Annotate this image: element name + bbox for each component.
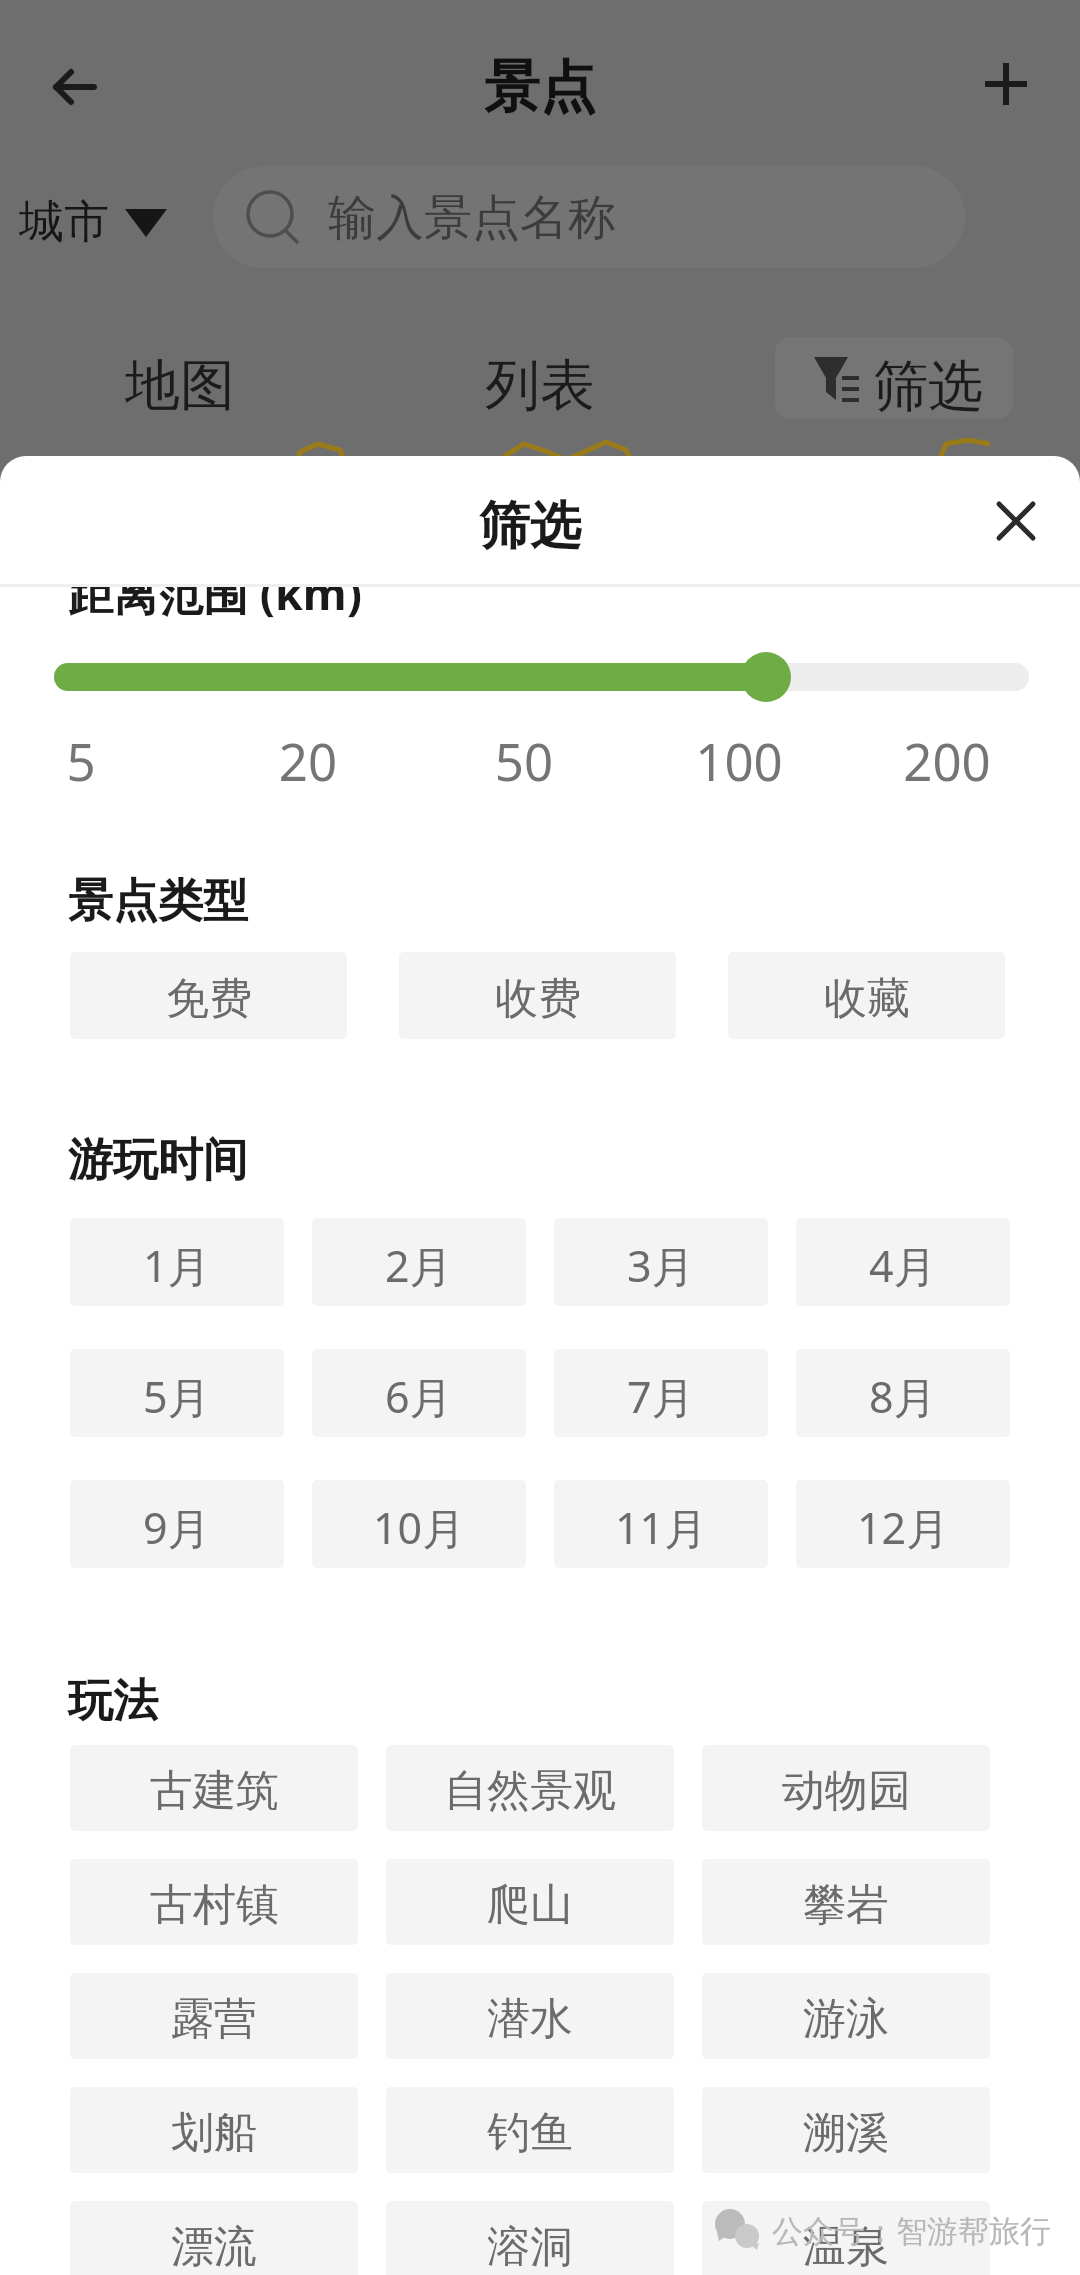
button[interactable]: 动物园	[702, 1745, 990, 1831]
staticText: 距离范围 (km)	[68, 587, 362, 623]
staticText: 11月	[615, 1498, 708, 1557]
button[interactable]: 露营	[70, 1973, 358, 2059]
staticText: 4月	[869, 1236, 937, 1295]
staticText: 古建筑	[150, 1764, 279, 1818]
staticText: 溯溪	[803, 2106, 889, 2160]
staticText: 收藏	[824, 972, 910, 1026]
button[interactable]: 输入景点名称	[213, 166, 965, 268]
button[interactable]: 游泳	[702, 1973, 990, 2059]
button[interactable]: 爬山	[386, 1859, 674, 1945]
staticText: 景点	[0, 52, 1080, 123]
button[interactable]: Close	[972, 477, 1060, 565]
button[interactable]: 地图	[0, 339, 360, 431]
button[interactable]: 7月	[554, 1349, 768, 1437]
button[interactable]: 划船	[70, 2087, 358, 2173]
staticText: 7月	[627, 1367, 695, 1426]
staticText: 50	[444, 726, 604, 795]
staticText: 动物园	[782, 1764, 911, 1818]
button[interactable]: 4月	[796, 1218, 1010, 1306]
button[interactable]: 潜水	[386, 1973, 674, 2059]
staticText: 100	[659, 726, 819, 795]
staticText: 攀岩	[803, 1878, 889, 1932]
staticText: 200	[867, 726, 1027, 795]
button[interactable]: 2月	[312, 1218, 526, 1306]
staticText: 溶洞	[487, 2220, 573, 2274]
button[interactable]: 免费	[70, 952, 347, 1039]
staticText: 免费	[166, 972, 252, 1026]
staticText: 温泉	[803, 2220, 889, 2274]
staticText: 爬山	[487, 1878, 573, 1932]
staticText: 筛选	[873, 352, 983, 419]
staticText: 游泳	[803, 1992, 889, 2046]
button[interactable]: 溯溪	[702, 2087, 990, 2173]
staticText: 5	[1, 726, 161, 795]
staticText: 露营	[171, 1992, 257, 2046]
button[interactable]: 1月	[70, 1218, 284, 1306]
staticText: 20	[228, 726, 388, 795]
button[interactable]: 6月	[312, 1349, 526, 1437]
button[interactable]: 溶洞	[386, 2201, 674, 2275]
button[interactable]: 钓鱼	[386, 2087, 674, 2173]
button[interactable]: 古村镇	[70, 1859, 358, 1945]
staticText: 8月	[869, 1367, 937, 1426]
staticText: 游玩时间	[68, 1132, 248, 1189]
staticText: 12月	[857, 1498, 950, 1557]
button[interactable]: Back	[30, 40, 120, 130]
button[interactable]: 12月	[796, 1480, 1010, 1568]
staticText: 2月	[385, 1236, 453, 1295]
staticText: 1月	[143, 1236, 211, 1295]
button[interactable]: 筛选	[775, 337, 1013, 419]
staticText: 10月	[373, 1498, 466, 1557]
staticText: 6月	[385, 1367, 453, 1426]
button[interactable]: 9月	[70, 1480, 284, 1568]
button[interactable]: 温泉	[702, 2201, 990, 2275]
staticText: 漂流	[171, 2220, 257, 2274]
staticText: 地图	[125, 351, 235, 420]
staticText: 玩法	[68, 1673, 158, 1730]
staticText: 3月	[627, 1236, 695, 1295]
staticText: 景点类型	[68, 873, 248, 930]
button[interactable]: 收费	[399, 952, 676, 1039]
staticText: 9月	[143, 1498, 211, 1557]
button[interactable]: 5月	[70, 1349, 284, 1437]
staticText: 钓鱼	[487, 2106, 573, 2160]
staticText: 收费	[495, 972, 581, 1026]
button[interactable]: 收藏	[728, 952, 1005, 1039]
staticText: 列表	[485, 351, 595, 420]
staticText: 划船	[171, 2106, 257, 2160]
button[interactable]: 城市	[19, 194, 167, 251]
staticText: 城市	[19, 194, 109, 251]
button[interactable]: 11月	[554, 1480, 768, 1568]
button[interactable]: 攀岩	[702, 1859, 990, 1945]
staticText: 自然景观	[444, 1764, 616, 1818]
staticText: 潜水	[487, 1992, 573, 2046]
button[interactable]: 8月	[796, 1349, 1010, 1437]
button[interactable]: 10月	[312, 1480, 526, 1568]
button[interactable]: 3月	[554, 1218, 768, 1306]
button[interactable]: 列表	[360, 339, 720, 431]
staticText: 筛选	[0, 494, 1070, 558]
staticText: 输入景点名称	[328, 188, 616, 248]
staticText: 5月	[143, 1367, 211, 1426]
button[interactable]: Add	[962, 40, 1050, 128]
staticText: 古村镇	[150, 1878, 279, 1932]
button[interactable]: 古建筑	[70, 1745, 358, 1831]
button[interactable]: 自然景观	[386, 1745, 674, 1831]
staticText: 公众号：智游帮旅行	[772, 2212, 1051, 2251]
button[interactable]: 漂流	[70, 2201, 358, 2275]
